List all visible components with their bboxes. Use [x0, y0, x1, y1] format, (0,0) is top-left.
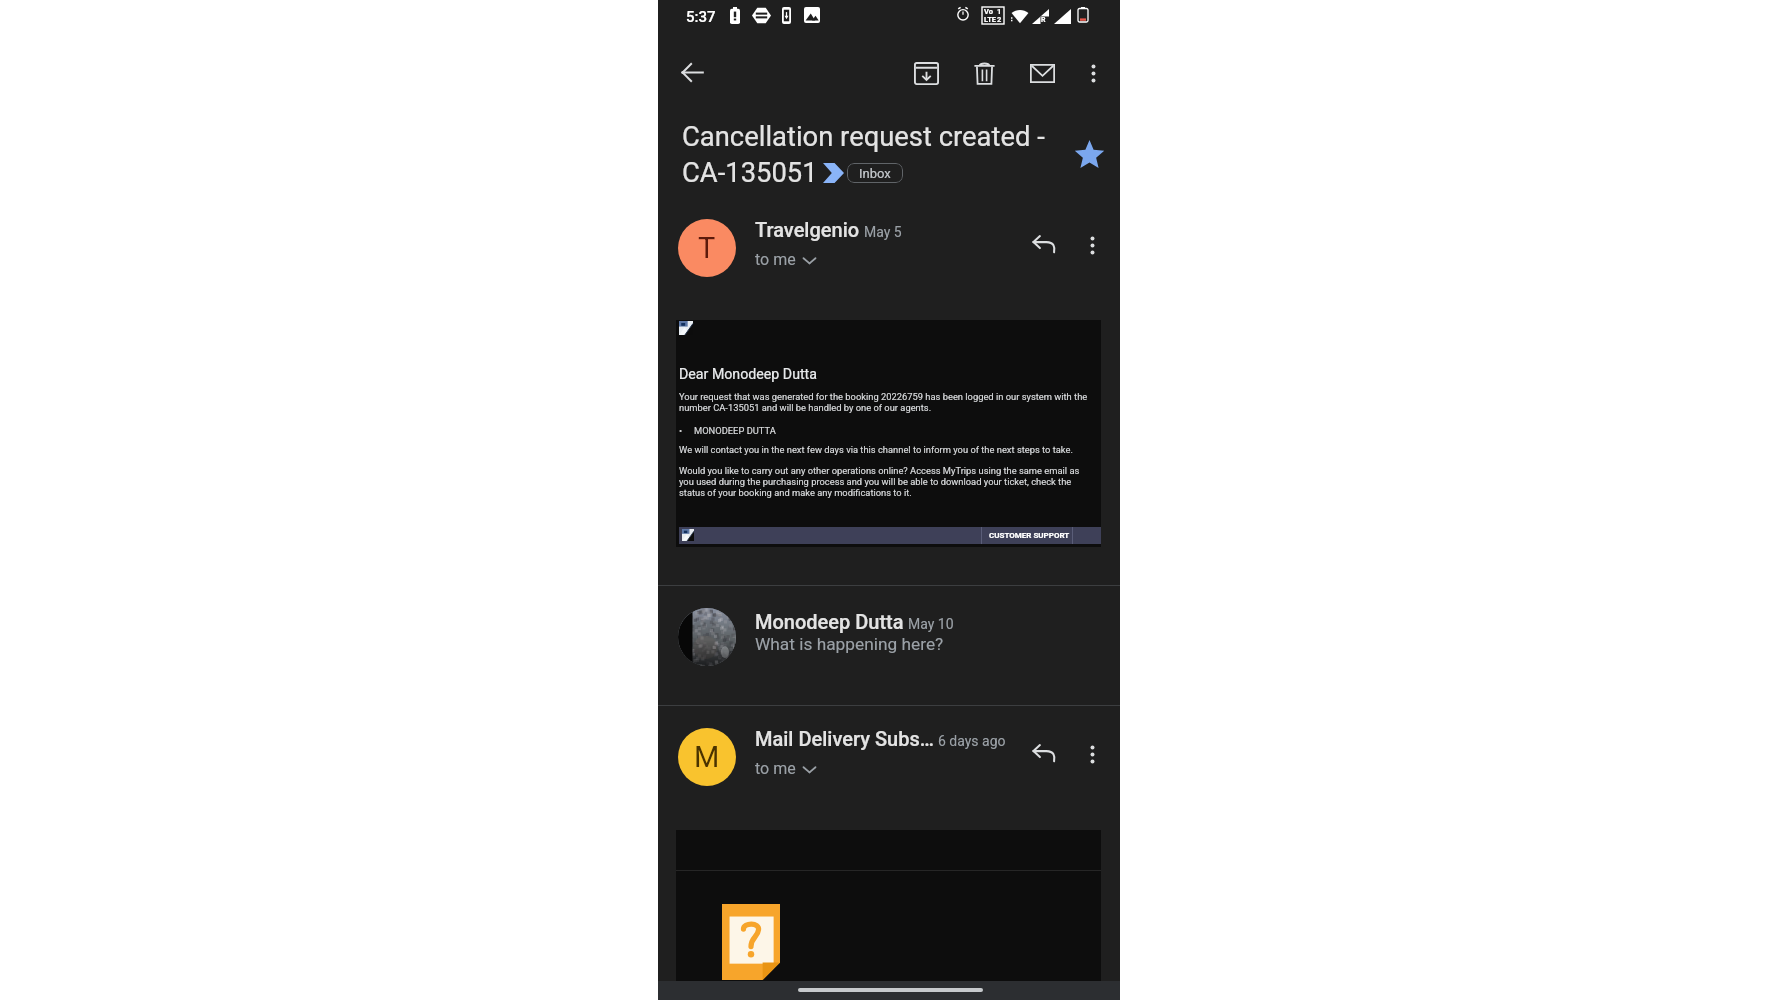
button[interactable]: CUSTOMER SUPPORT — [989, 531, 1070, 540]
staticText: • — [679, 425, 683, 436]
staticText: MONODEEP DUTTA — [694, 425, 776, 436]
staticText: LTE — [984, 15, 997, 24]
staticText: Your request that was generated for the … — [679, 391, 1089, 413]
button[interactable]: to me — [755, 759, 816, 778]
staticText: R — [1041, 16, 1046, 24]
staticText: May 5 — [864, 224, 902, 240]
button[interactable]: Back — [670, 50, 714, 94]
staticText: 1 — [997, 7, 1002, 16]
staticText: Travelgenio — [755, 218, 860, 241]
button[interactable]: Archive — [904, 51, 948, 95]
staticText: We will contact you in the next few days… — [679, 444, 1091, 455]
staticText: 2 — [997, 15, 1002, 24]
button[interactable]: Reply — [1024, 734, 1064, 774]
staticText: to me — [755, 759, 796, 778]
button[interactable]: Inbox — [847, 163, 903, 183]
staticText: 6 days ago — [938, 733, 1006, 749]
staticText: Cancellation request created - — [682, 121, 1045, 153]
button[interactable]: Delete — [962, 51, 1006, 95]
staticText: T — [698, 231, 716, 265]
staticText: 5:37 — [686, 8, 716, 26]
staticText: Mail Delivery Subs… — [755, 727, 934, 750]
staticText: CA-135051 — [682, 157, 818, 189]
staticText: Would you like to carry out any other op… — [679, 465, 1089, 498]
staticText: to me — [755, 250, 796, 269]
button[interactable]: to me — [755, 250, 816, 269]
button[interactable]: More options — [1072, 225, 1112, 265]
button[interactable]: Reply — [1024, 225, 1064, 265]
button[interactable]: Starred — [1067, 133, 1111, 177]
staticText: Inbox — [859, 166, 891, 181]
staticText: What is happening here? — [755, 634, 944, 654]
staticText: Monodeep Dutta — [755, 610, 904, 633]
button[interactable]: Mark unread — [1020, 51, 1064, 95]
staticText: Dear Monodeep Dutta — [679, 366, 817, 383]
button[interactable]: More options — [1071, 51, 1115, 95]
staticText: M — [694, 740, 720, 774]
staticText: May 10 — [908, 616, 954, 632]
staticText: Vo — [984, 7, 993, 16]
button[interactable]: More options — [1072, 734, 1112, 774]
